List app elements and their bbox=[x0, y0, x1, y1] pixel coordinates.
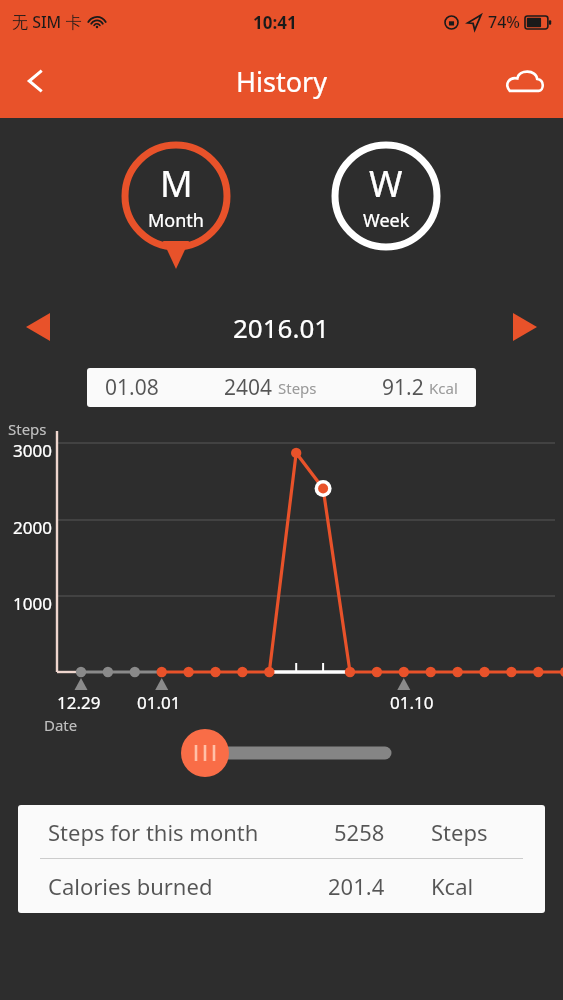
staticText: 无 SIM 卡 bbox=[12, 11, 82, 33]
staticText: 2016.01 bbox=[233, 310, 330, 345]
staticText: 91.2 bbox=[382, 373, 424, 402]
button[interactable]: W bbox=[331, 141, 441, 286]
staticText: History bbox=[236, 63, 327, 100]
staticText: Steps bbox=[278, 378, 317, 398]
staticText: Week bbox=[363, 208, 410, 233]
staticText: Kcal bbox=[431, 871, 474, 901]
staticText: 01.10 bbox=[390, 691, 434, 714]
staticText: M bbox=[160, 159, 193, 208]
button[interactable]: Scroll chart bbox=[0, 725, 563, 781]
staticText: W bbox=[369, 159, 403, 208]
staticText: 2000 bbox=[13, 516, 52, 539]
button[interactable]: Previous bbox=[14, 304, 62, 350]
staticText: 5258 bbox=[334, 817, 385, 847]
button[interactable]: Calories burned bbox=[18, 859, 545, 913]
staticText: 10:41 bbox=[253, 11, 297, 34]
staticText: Steps bbox=[8, 419, 47, 439]
staticText: 01.08 bbox=[105, 373, 159, 402]
staticText: Month bbox=[148, 208, 204, 233]
staticText: 2404 bbox=[224, 373, 273, 402]
staticText: 01.01 bbox=[137, 691, 181, 714]
button[interactable]: Next bbox=[501, 304, 549, 350]
staticText: 3000 bbox=[13, 439, 52, 462]
staticText: 12.29 bbox=[57, 691, 101, 714]
button[interactable]: Cloud sync bbox=[497, 53, 553, 109]
staticText: Steps bbox=[431, 817, 488, 847]
staticText: 74% bbox=[488, 11, 520, 33]
staticText: Kcal bbox=[429, 378, 458, 398]
staticText: Date bbox=[44, 715, 78, 735]
staticText: Calories burned bbox=[48, 871, 213, 901]
button[interactable]: M bbox=[121, 141, 231, 286]
button[interactable]: Back bbox=[8, 53, 64, 109]
button[interactable]: Steps for this month bbox=[18, 805, 545, 858]
staticText: 1000 bbox=[13, 592, 52, 615]
staticText: Steps for this month bbox=[48, 817, 259, 847]
button[interactable]: 01.08 bbox=[87, 368, 476, 407]
staticText: 201.4 bbox=[328, 871, 385, 901]
